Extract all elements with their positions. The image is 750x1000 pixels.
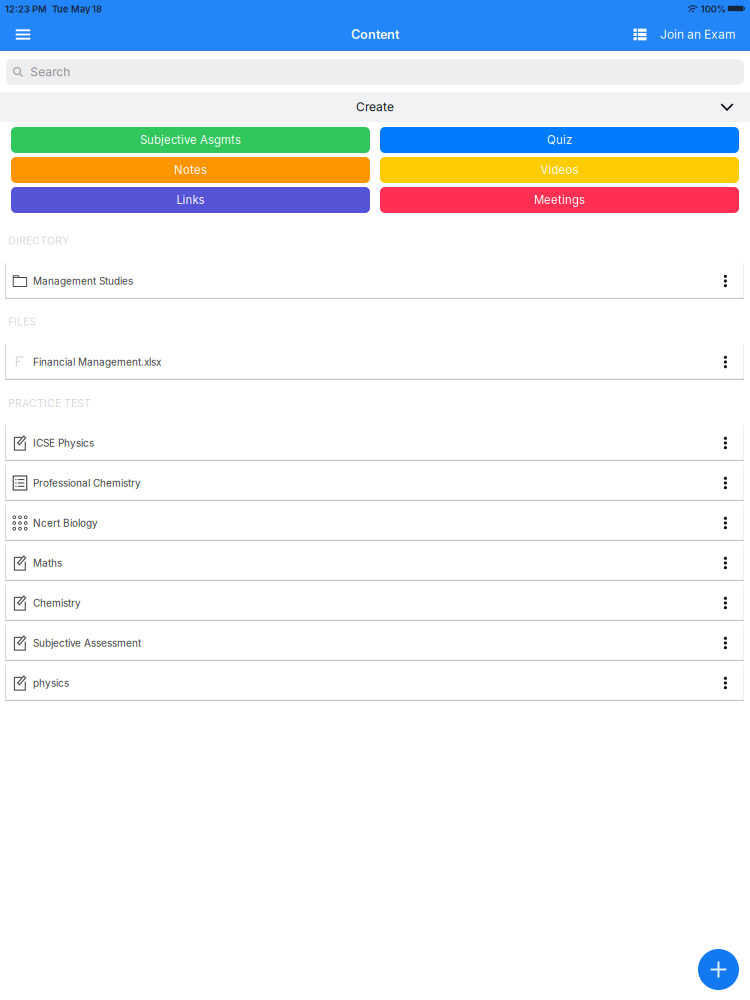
staticText: Tue May 18 — [52, 3, 102, 15]
staticText: Notes — [174, 163, 207, 177]
staticText: FILES — [8, 315, 36, 328]
staticText: Quiz — [547, 133, 572, 147]
button[interactable]: Meetings — [380, 187, 739, 213]
button[interactable]: Chemistry — [0, 585, 750, 621]
staticText: Meetings — [534, 193, 585, 207]
button[interactable]: Videos — [380, 157, 739, 183]
button[interactable]: Add — [698, 949, 739, 990]
button[interactable]: Menu — [8, 18, 38, 51]
button[interactable]: Table view — [627, 18, 653, 51]
staticText: Professional Chemistry — [33, 477, 141, 489]
button[interactable]: Maths — [0, 545, 750, 581]
staticText: Subjective Assessment — [33, 637, 141, 649]
staticText: Search — [30, 65, 70, 79]
button[interactable]: physics — [0, 665, 750, 701]
staticText: 100% — [701, 3, 726, 15]
button[interactable]: Financial Management.xlsx — [0, 344, 750, 380]
button[interactable]: Collapse Create — [714, 92, 740, 122]
staticText: Ncert Biology — [33, 517, 98, 529]
staticText: Create — [356, 100, 394, 114]
button[interactable]: Subjective Assessment — [0, 625, 750, 661]
button[interactable]: Quiz — [380, 127, 739, 153]
staticText: Financial Management.xlsx — [33, 356, 161, 368]
staticText: ICSE Physics — [33, 437, 94, 449]
staticText: Content — [351, 27, 399, 42]
staticText: Videos — [540, 163, 578, 177]
staticText: Subjective Asgmts — [140, 133, 241, 147]
staticText: Chemistry — [33, 597, 81, 609]
staticText: physics — [33, 677, 69, 689]
button[interactable]: Professional Chemistry — [0, 465, 750, 501]
staticText: DIRECTORY — [8, 234, 69, 247]
button[interactable]: Join an Exam — [653, 18, 743, 51]
button[interactable]: Subjective Asgmts — [11, 127, 370, 153]
button[interactable]: Links — [11, 187, 370, 213]
button[interactable]: Management Studies — [0, 263, 750, 299]
staticText: 12:23 PM — [5, 3, 47, 15]
staticText: Join an Exam — [660, 27, 736, 42]
staticText: Management Studies — [33, 275, 133, 287]
button[interactable]: Notes — [11, 157, 370, 183]
button[interactable]: Ncert Biology — [0, 505, 750, 541]
button[interactable]: ICSE Physics — [0, 425, 750, 461]
staticText: PRACTICE TEST — [8, 396, 91, 409]
staticText: Links — [176, 193, 204, 207]
staticText: Maths — [33, 557, 62, 569]
